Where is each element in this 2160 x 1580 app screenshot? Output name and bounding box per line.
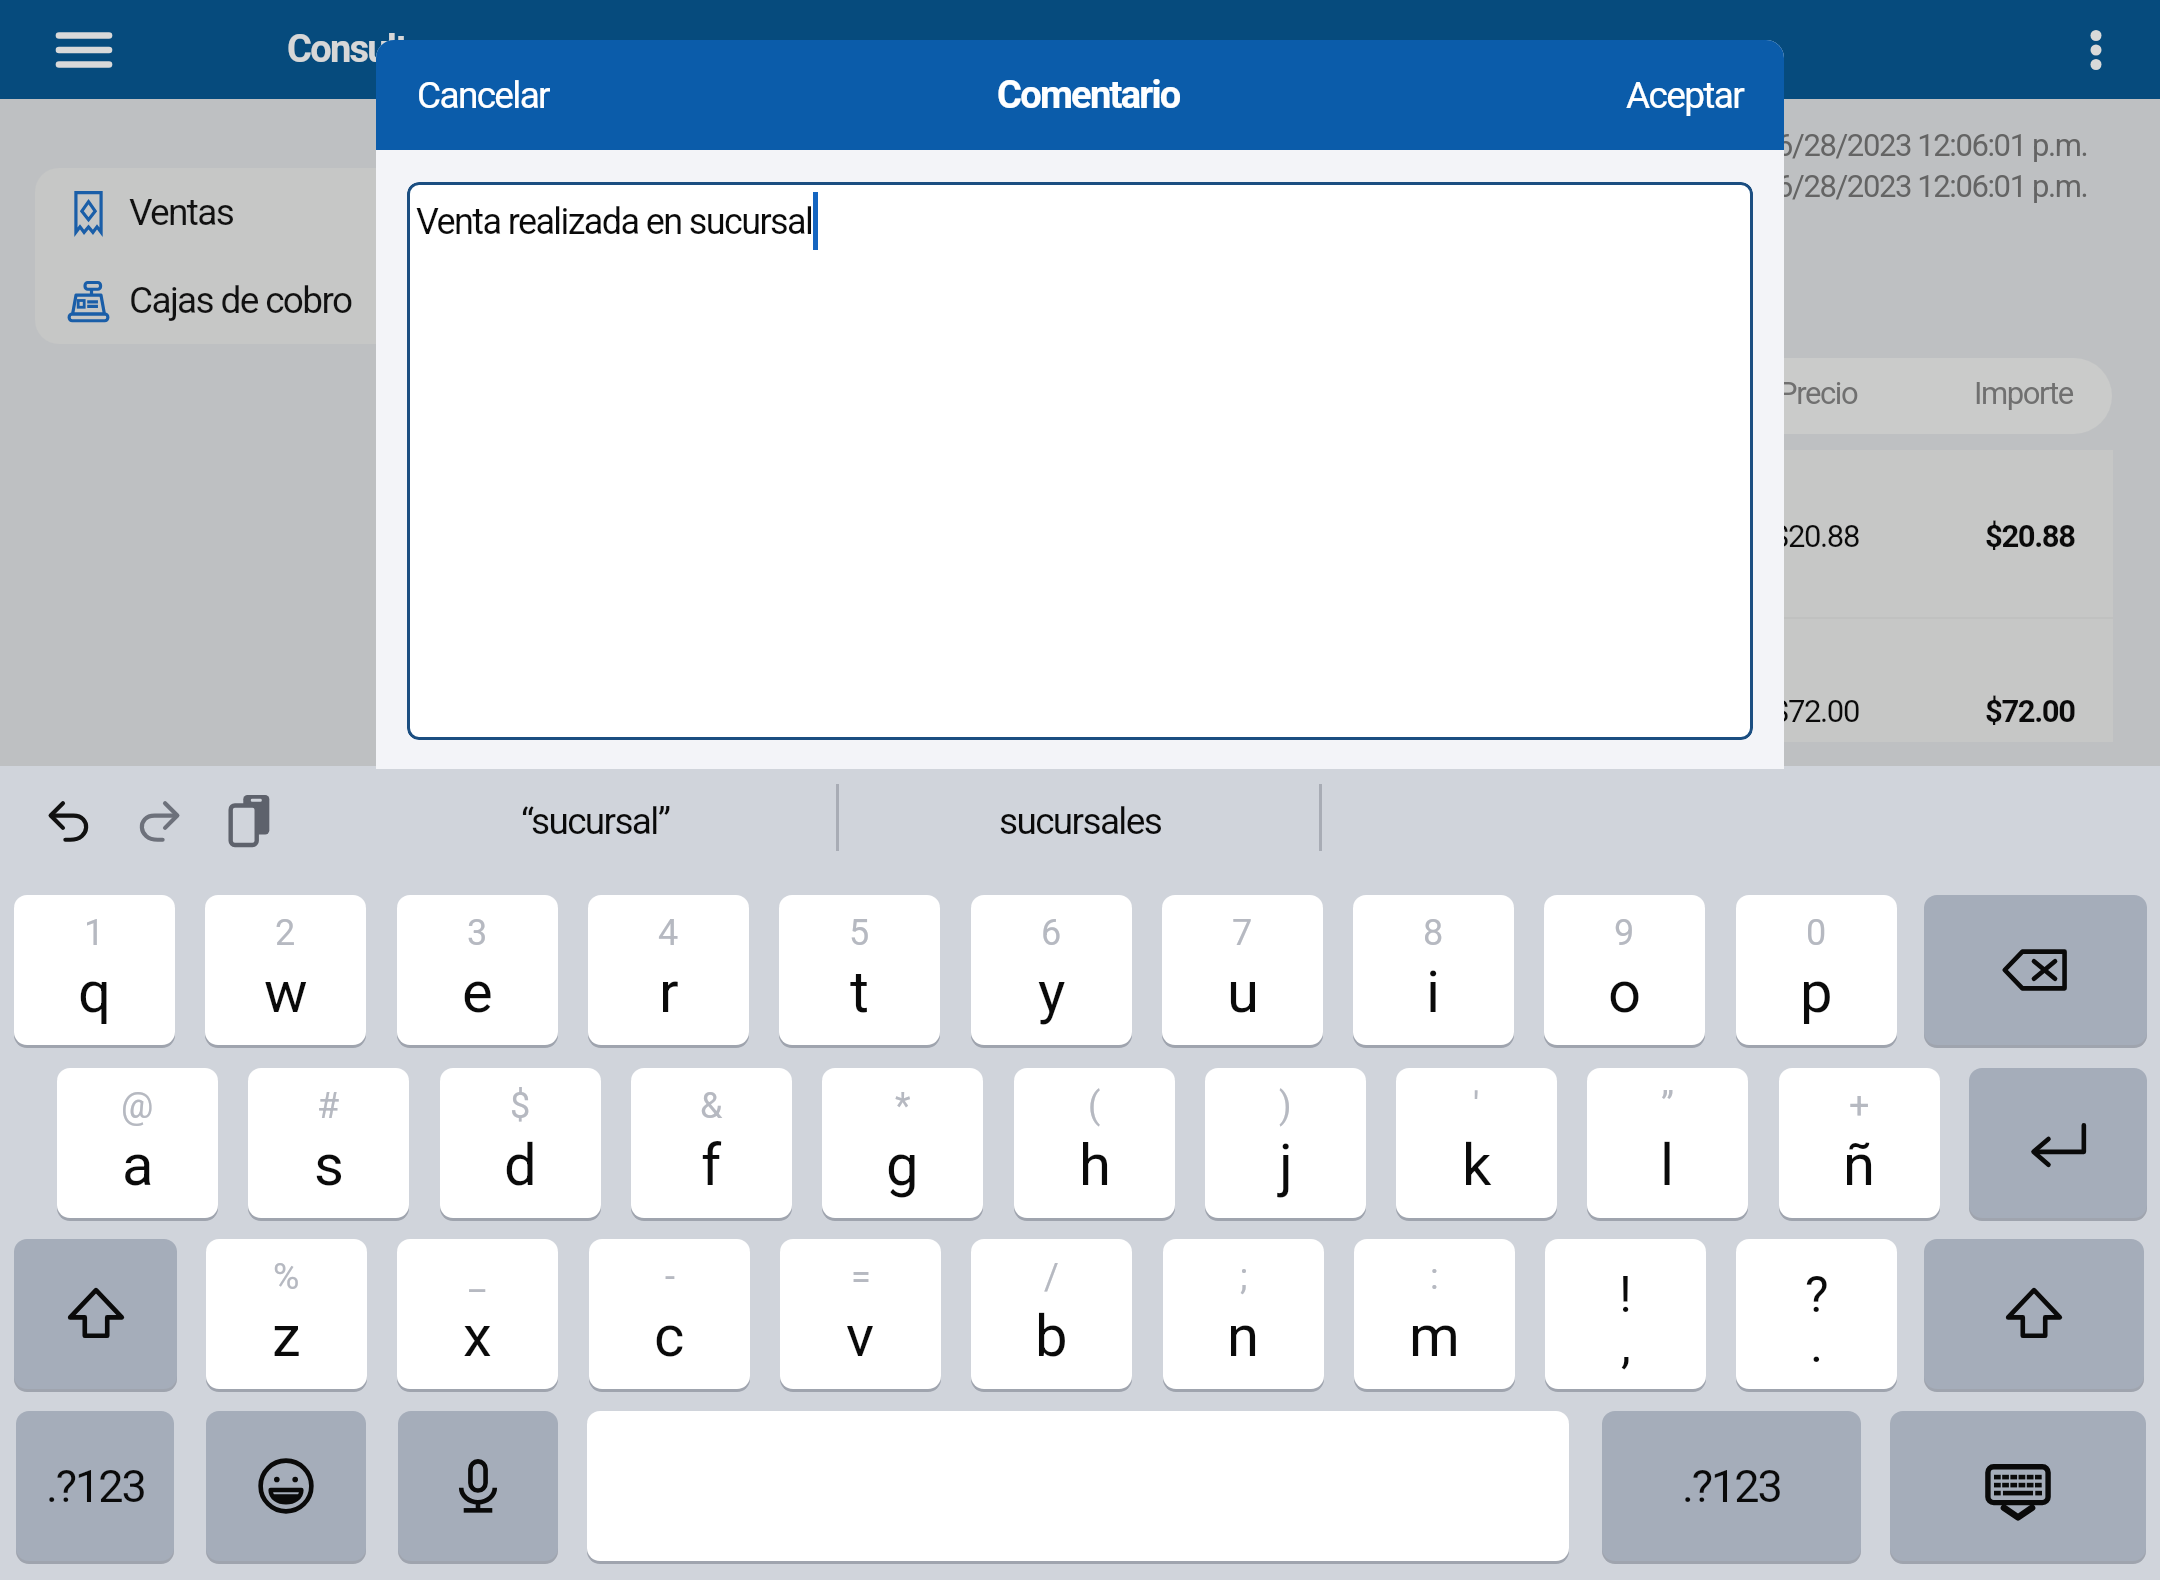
button[interactable]: Hide keyboard	[1890, 1411, 2146, 1561]
staticText: .	[1810, 1316, 1824, 1375]
button[interactable]: 0	[1736, 895, 1897, 1045]
staticText: f	[701, 1131, 722, 1199]
staticText: !	[1619, 1266, 1632, 1325]
button[interactable]: %	[206, 1239, 367, 1389]
button[interactable]: &	[631, 1068, 792, 1218]
staticText: Aceptar	[1626, 74, 1744, 117]
button[interactable]: Shift	[1924, 1239, 2144, 1389]
button[interactable]: 7	[1162, 895, 1323, 1045]
staticText: _	[469, 1256, 486, 1298]
staticText: m	[1409, 1302, 1460, 1370]
staticText: Precio	[1778, 375, 1858, 411]
staticText: u	[1227, 958, 1259, 1026]
button[interactable]: Emoji	[206, 1411, 366, 1561]
button[interactable]: *	[822, 1068, 983, 1218]
button[interactable]: sucursales	[838, 766, 1322, 876]
staticText: 4	[658, 912, 679, 954]
button[interactable]: Redo	[122, 784, 194, 856]
button[interactable]: Venta realizada en sucursal	[407, 182, 1753, 740]
staticText: ,	[1621, 1316, 1631, 1375]
button[interactable]: 3	[397, 895, 558, 1045]
button[interactable]: Clipboard	[214, 784, 286, 856]
staticText: t	[850, 958, 869, 1026]
staticText: 3	[467, 912, 488, 954]
button[interactable]: =	[780, 1239, 941, 1389]
button[interactable]: 1	[14, 895, 175, 1045]
staticText: &	[700, 1085, 723, 1127]
staticText: '	[1473, 1085, 1480, 1127]
button[interactable]	[1300, 450, 2113, 617]
staticText: o	[1608, 958, 1642, 1026]
staticText: .?123	[1682, 1460, 1781, 1513]
staticText: k	[1462, 1131, 1492, 1199]
staticText: Importe	[1974, 375, 2073, 411]
button[interactable]: Enter	[1969, 1068, 2147, 1218]
staticText: %	[273, 1256, 300, 1298]
button[interactable]: $	[440, 1068, 601, 1218]
staticText: j	[1279, 1131, 1293, 1199]
button[interactable]: Menu	[44, 10, 124, 90]
staticText: 6/28/2023 12:06:01 p.m.	[1776, 127, 2088, 163]
button[interactable]: Backspace	[1924, 895, 2147, 1045]
staticText: Comentario	[997, 73, 1180, 118]
button[interactable]: 4	[588, 895, 749, 1045]
button[interactable]: 5	[779, 895, 940, 1045]
staticText: i	[1426, 958, 1441, 1026]
button[interactable]: '	[1396, 1068, 1557, 1218]
button[interactable]: ?	[1736, 1239, 1897, 1389]
button[interactable]: :	[1354, 1239, 1515, 1389]
staticText: +	[1849, 1085, 1870, 1127]
staticText: sucursales	[999, 800, 1162, 843]
staticText: b	[1035, 1302, 1068, 1370]
staticText: *	[895, 1085, 911, 1127]
staticText: d	[504, 1131, 537, 1199]
staticText: h	[1079, 1131, 1111, 1199]
staticText: 1	[84, 912, 105, 954]
button[interactable]: Undo	[33, 784, 105, 856]
button[interactable]: 6	[971, 895, 1132, 1045]
button[interactable]: Ventas	[35, 168, 595, 256]
button[interactable]: “sucursal”	[353, 766, 837, 876]
staticText: 7	[1232, 912, 1253, 954]
button[interactable]: Cancelar	[376, 40, 590, 150]
button[interactable]: Cajas de cobro	[35, 256, 595, 344]
button[interactable]: Shift	[14, 1239, 177, 1389]
staticText: ?	[1805, 1266, 1829, 1325]
button[interactable]: _	[397, 1239, 558, 1389]
button[interactable]: 9	[1544, 895, 1705, 1045]
button[interactable]: Aceptar	[1586, 40, 1784, 150]
button[interactable]: @	[57, 1068, 218, 1218]
button[interactable]: 2	[205, 895, 366, 1045]
button[interactable]: ;	[1163, 1239, 1324, 1389]
button[interactable]: More options	[2064, 18, 2128, 82]
button[interactable]: )	[1205, 1068, 1366, 1218]
staticText: q	[78, 958, 111, 1026]
staticText: z	[272, 1302, 301, 1370]
button[interactable]: 8	[1353, 895, 1514, 1045]
button[interactable]: .?123	[16, 1411, 174, 1561]
staticText: v	[846, 1302, 875, 1370]
button[interactable]: (	[1014, 1068, 1175, 1218]
staticText: p	[1800, 958, 1833, 1026]
button[interactable]: ”	[1587, 1068, 1748, 1218]
button[interactable]: +	[1779, 1068, 1940, 1218]
staticText: -	[665, 1256, 675, 1298]
staticText: .?123	[46, 1460, 145, 1513]
staticText: 6/28/2023 12:06:01 p.m.	[1776, 168, 2088, 204]
staticText: $72.00	[1772, 693, 1859, 729]
button[interactable]: !	[1545, 1239, 1706, 1389]
staticText: 9	[1614, 912, 1635, 954]
staticText: $	[510, 1085, 531, 1127]
button[interactable]: Voice input	[398, 1411, 558, 1561]
staticText: y	[1038, 958, 1066, 1026]
staticText: =	[851, 1256, 871, 1298]
button[interactable]: #	[248, 1068, 409, 1218]
button[interactable]	[1300, 619, 2113, 742]
staticText: :	[1430, 1256, 1439, 1298]
button[interactable]: .?123	[1602, 1411, 1861, 1561]
staticText: @	[121, 1085, 154, 1127]
button[interactable]: /	[971, 1239, 1132, 1389]
staticText: ;	[1240, 1256, 1248, 1298]
button[interactable]: -	[589, 1239, 750, 1389]
